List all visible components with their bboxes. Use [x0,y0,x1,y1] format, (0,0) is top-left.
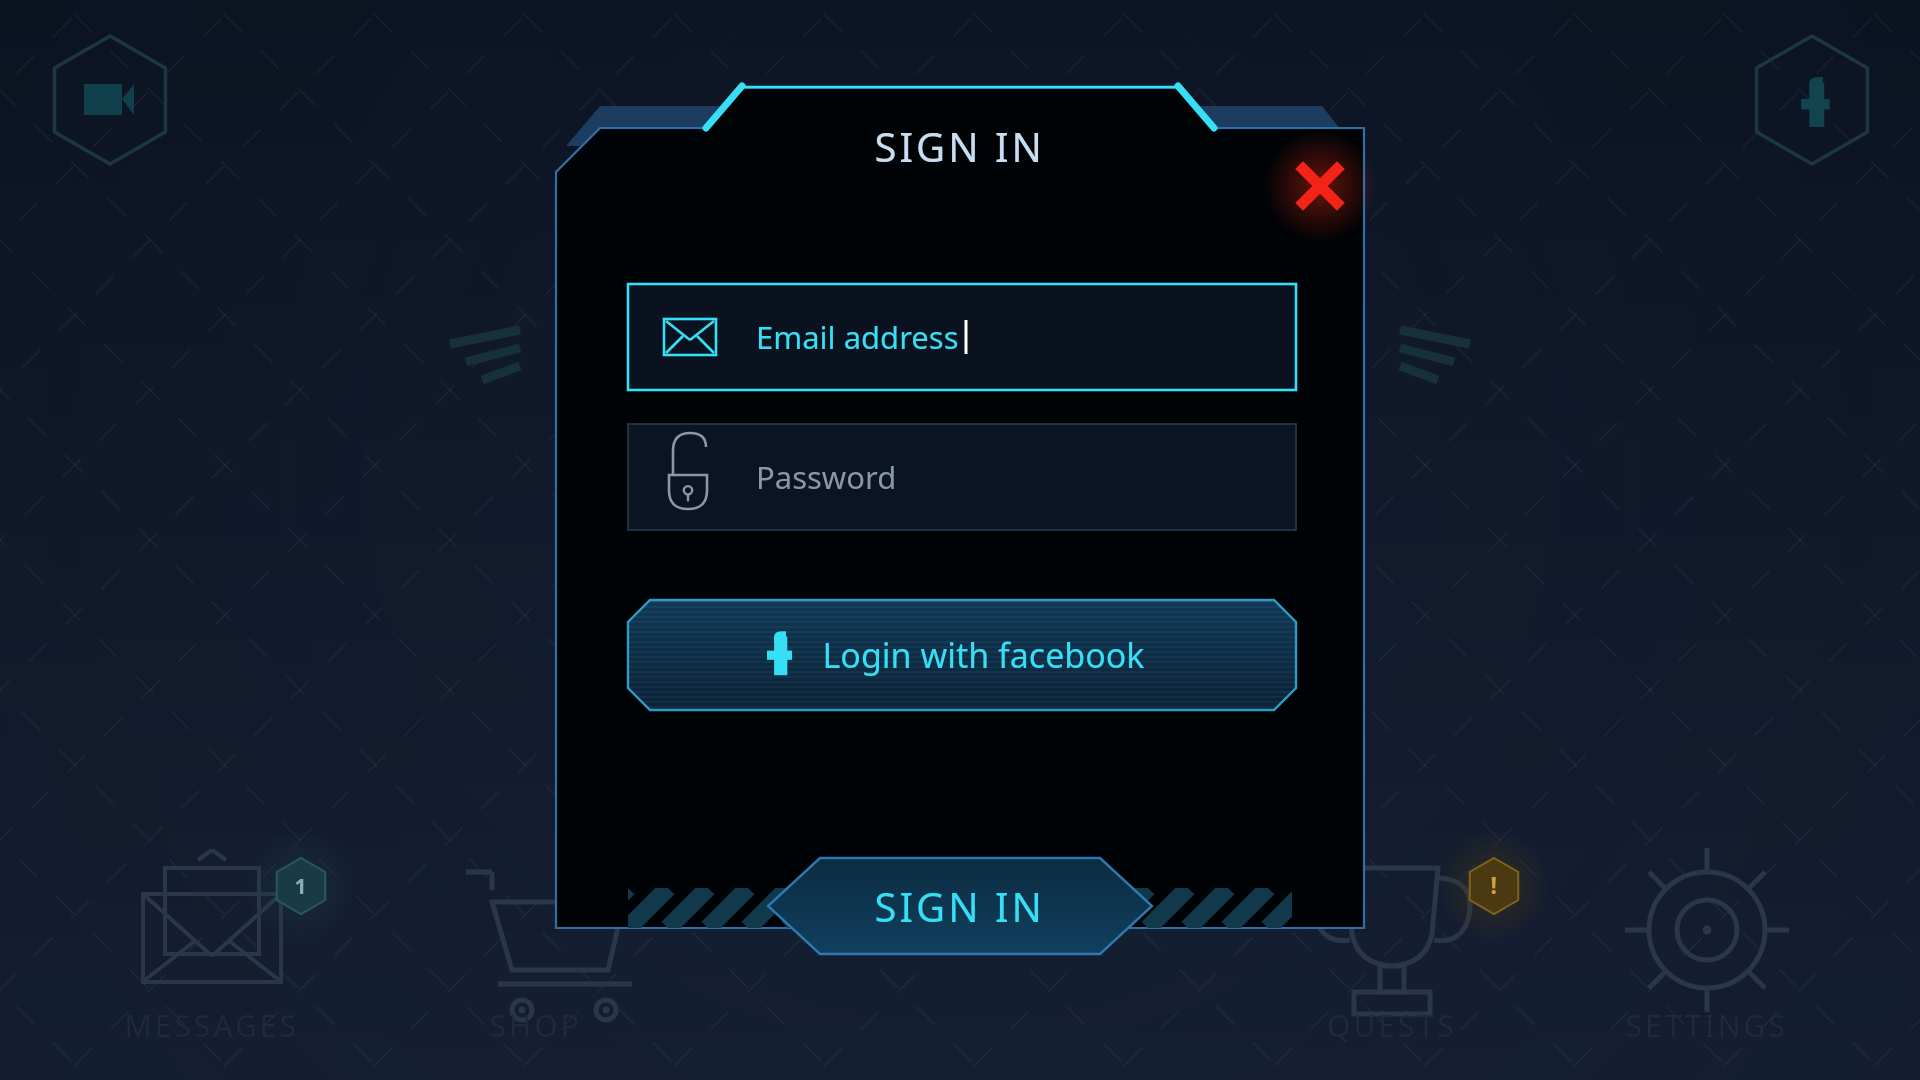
button[interactable]: Facebook [1755,40,1875,160]
button[interactable]: Email address [628,282,1298,392]
button[interactable]: Quests [1318,852,1468,1062]
button[interactable]: Login with facebook [628,600,1298,712]
button[interactable]: Messages [140,852,290,1062]
button[interactable]: Shop [462,852,612,1062]
button[interactable]: Password [628,422,1298,532]
button[interactable]: Video [50,40,170,160]
button[interactable]: Close [1292,158,1350,216]
button[interactable]: Sign in [768,858,1152,956]
button[interactable]: Settings [1632,852,1782,1062]
